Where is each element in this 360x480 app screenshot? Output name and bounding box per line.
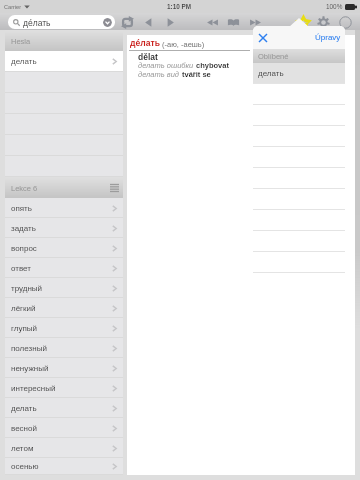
- button[interactable]: лёгкий: [5, 298, 123, 318]
- button[interactable]: делать: [253, 63, 345, 83]
- staticText: делать вид: [138, 70, 182, 78]
- button[interactable]: ответ: [5, 258, 123, 278]
- staticText: дéлать: [23, 18, 51, 27]
- button[interactable]: Previous: [204, 14, 220, 30]
- button[interactable]: опять: [5, 198, 123, 218]
- button[interactable]: Clear search: [103, 18, 112, 27]
- staticText: Carrier: [4, 4, 22, 10]
- staticText: Hesla: [11, 37, 31, 45]
- staticText: интересный: [11, 384, 56, 393]
- button[interactable]: интересный: [5, 378, 123, 398]
- staticText: dělat: [138, 52, 158, 61]
- staticText: глупый: [11, 324, 37, 333]
- button[interactable]: Favorites: [295, 14, 311, 30]
- button[interactable]: Next: [247, 14, 263, 30]
- staticText: трудный: [11, 284, 43, 293]
- staticText: 100%: [326, 3, 343, 10]
- staticText: опять: [11, 204, 32, 213]
- staticText: ненужный: [11, 364, 49, 373]
- button[interactable]: Sync: [119, 14, 135, 30]
- staticText: делать: [11, 404, 37, 413]
- staticText: делать: [258, 69, 284, 78]
- button[interactable]: Info: [337, 14, 353, 30]
- button[interactable]: делать: [5, 398, 123, 418]
- staticText: делать: [11, 57, 37, 66]
- staticText: Oblíbené: [258, 52, 289, 60]
- button[interactable]: Settings: [315, 14, 331, 30]
- button[interactable]: летом: [5, 438, 123, 458]
- staticText: дéлать: [130, 38, 160, 48]
- staticText: (-аю, -аешь): [162, 40, 205, 48]
- staticText: делать ошибки: [138, 61, 196, 69]
- button[interactable]: задать: [5, 218, 123, 238]
- staticText: полезный: [11, 344, 47, 353]
- button[interactable]: делать: [5, 51, 123, 72]
- staticText: 1:10 PM: [167, 3, 192, 10]
- button[interactable]: полезный: [5, 338, 123, 358]
- button[interactable]: вопрос: [5, 238, 123, 258]
- button[interactable]: Back: [140, 14, 156, 30]
- staticText: летом: [11, 444, 34, 453]
- button[interactable]: весной: [5, 418, 123, 438]
- button[interactable]: осенью: [5, 458, 123, 475]
- button[interactable]: ненужный: [5, 358, 123, 378]
- button[interactable]: трудный: [5, 278, 123, 298]
- button[interactable]: Forward: [162, 14, 178, 30]
- button[interactable]: глупый: [5, 318, 123, 338]
- staticText: tvářit se: [182, 70, 211, 78]
- staticText: лёгкий: [11, 304, 36, 313]
- staticText: задать: [11, 224, 36, 233]
- staticText: осенью: [11, 462, 39, 471]
- staticText: вопрос: [11, 244, 37, 253]
- staticText: Úpravy: [315, 33, 341, 42]
- staticText: весной: [11, 424, 37, 433]
- staticText: Lekce 6: [11, 184, 38, 192]
- staticText: ответ: [11, 264, 31, 273]
- button[interactable]: Dictionary: [225, 14, 241, 30]
- staticText: chybovat: [196, 61, 229, 69]
- button[interactable]: Úpravy: [311, 29, 345, 46]
- button[interactable]: Close: [256, 31, 270, 45]
- button[interactable]: дéлать: [8, 15, 115, 29]
